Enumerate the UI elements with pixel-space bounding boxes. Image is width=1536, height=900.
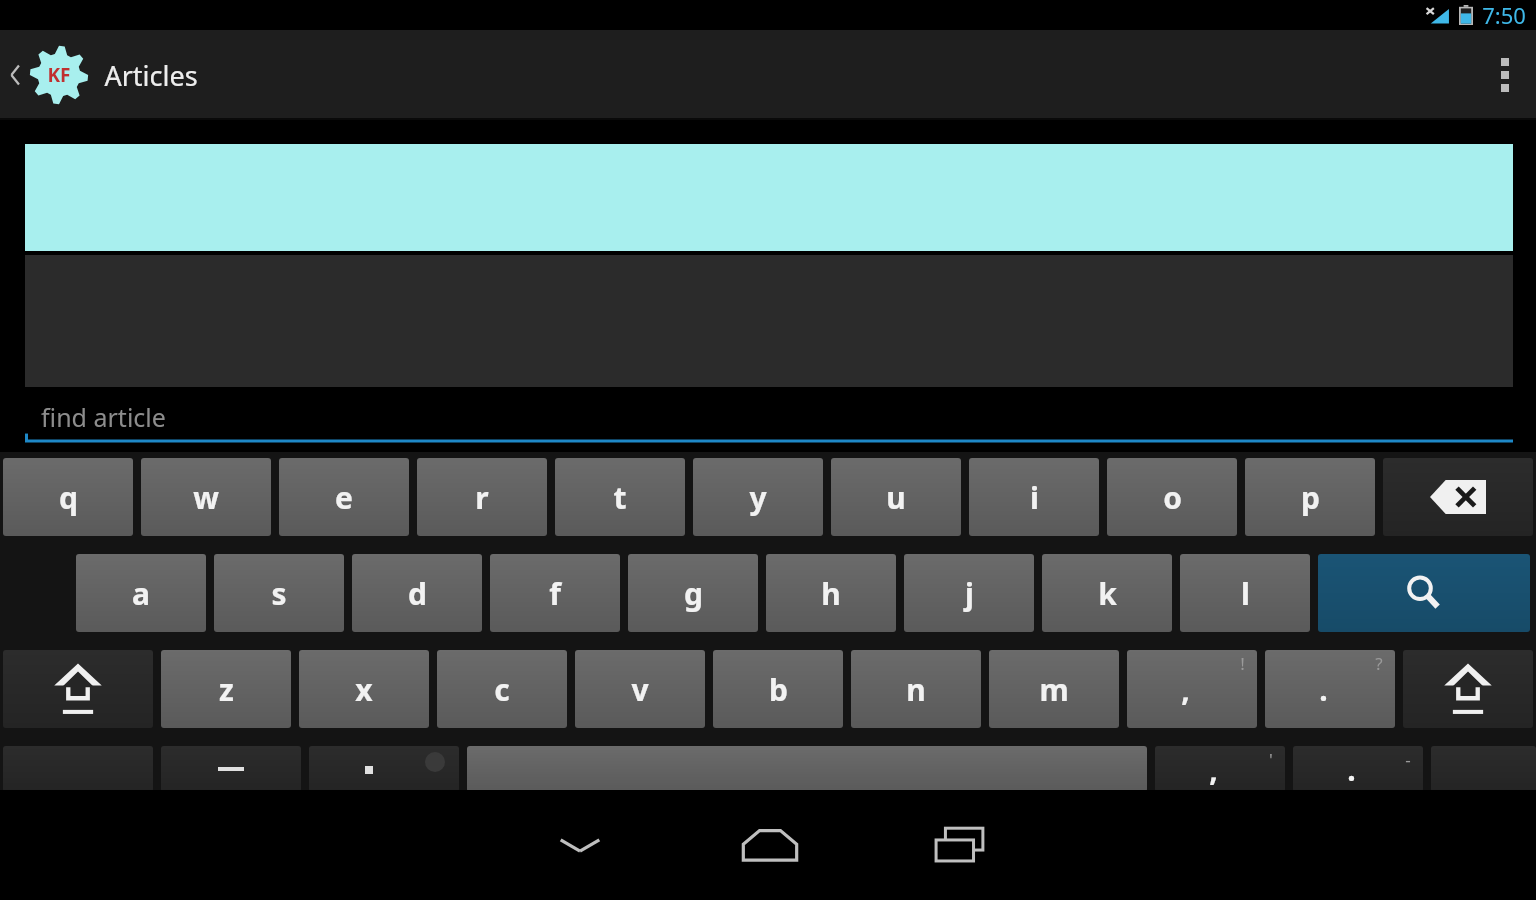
button[interactable]: x [299,650,429,728]
button[interactable]: Space [467,746,1147,792]
button[interactable]: b [713,650,843,728]
button[interactable]: r [417,458,547,536]
button[interactable]: ! [1127,650,1257,728]
button[interactable]: Voice input [309,746,459,792]
staticText: . [1347,749,1356,790]
button[interactable]: Settings [161,746,301,792]
button[interactable]: k [1042,554,1172,632]
staticText: Articles [104,57,198,94]
staticText: h [821,573,841,614]
staticText: KF [47,62,71,88]
staticText: b [769,669,788,710]
button[interactable]: KF [0,44,210,106]
button[interactable]: Shift [3,650,153,728]
staticText: z [219,669,234,710]
staticText: r [475,477,489,518]
button[interactable]: q [3,458,133,536]
staticText: i [1030,477,1039,518]
button[interactable]: i [969,458,1099,536]
button[interactable]: h [766,554,896,632]
staticText: v [631,669,649,710]
staticText: t [613,477,627,518]
staticText: l [1241,573,1250,614]
staticText: o [1163,477,1182,518]
button[interactable]: Search [1318,554,1530,632]
button[interactable]: a [76,554,206,632]
staticText: x [355,669,373,710]
button[interactable]: d [352,554,482,632]
button[interactable]: t [555,458,685,536]
staticText: k [1098,573,1117,614]
button[interactable]: n [851,650,981,728]
button[interactable]: z [161,650,291,728]
button[interactable]: v [575,650,705,728]
button[interactable]: More options [1474,30,1536,120]
button[interactable]: find article [25,395,1513,443]
button[interactable]: j [904,554,1034,632]
staticText: 7:50 [1482,0,1526,30]
button[interactable]: w [141,458,271,536]
staticText: n [906,669,926,710]
staticText: w [193,477,219,518]
button[interactable]: More [1431,746,1536,792]
button[interactable]: Hide keyboard [500,790,660,900]
staticText: q [59,477,78,518]
button[interactable]: y [693,458,823,536]
button[interactable]: Shift [1403,650,1533,728]
button[interactable]: Recent apps [880,790,1040,900]
staticText: m [1039,669,1069,710]
button[interactable]: c [437,650,567,728]
button[interactable]: e [279,458,409,536]
staticText: a [132,573,150,614]
staticText: c [494,669,510,710]
button[interactable]: l [1180,554,1310,632]
staticText: g [684,573,703,614]
staticText: ' [1269,748,1273,771]
button[interactable]: u [831,458,961,536]
button[interactable]: f [490,554,620,632]
staticText: - [1405,748,1411,771]
staticText: ? [1375,652,1383,675]
button[interactable]: p [1245,458,1375,536]
staticText: ! [1240,652,1245,675]
staticText: . [1319,669,1328,710]
button[interactable]: m [989,650,1119,728]
staticText: s [271,573,287,614]
button[interactable]: Symbols [3,746,153,792]
button[interactable]: - [1293,746,1423,792]
staticText: y [749,477,767,518]
staticText: find article [41,400,166,434]
staticText: , [1209,749,1218,790]
staticText: f [549,573,561,614]
button[interactable]: Delete [1383,458,1533,536]
button[interactable]: Home [690,790,850,900]
button[interactable]: g [628,554,758,632]
staticText: d [408,573,427,614]
staticText: e [335,477,353,518]
staticText: j [965,573,974,614]
staticText: p [1301,477,1320,518]
button[interactable]: s [214,554,344,632]
staticText: , [1181,669,1190,710]
button[interactable]: ? [1265,650,1395,728]
staticText: u [886,477,906,518]
button[interactable]: ' [1155,746,1285,792]
button[interactable]: o [1107,458,1237,536]
